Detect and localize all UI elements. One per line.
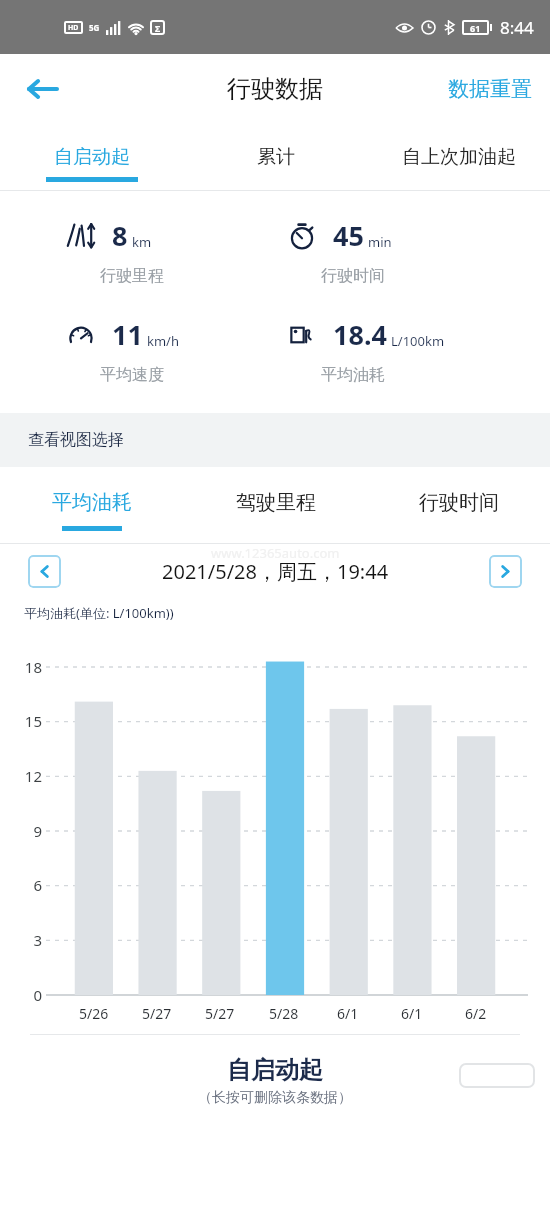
- staticText: 行驶时间: [419, 490, 499, 515]
- button[interactable]: 自启动起: [0, 124, 184, 190]
- staticText: 18: [8, 657, 42, 677]
- staticText: 12: [8, 766, 42, 786]
- staticText: 8: [112, 217, 128, 254]
- staticText: 行驶时间: [321, 266, 385, 286]
- staticText: 61: [470, 22, 481, 34]
- staticText: 5G: [89, 22, 100, 33]
- button[interactable]: 累计: [184, 124, 367, 190]
- staticText: km/h: [147, 332, 179, 350]
- staticText: 5/28: [269, 1004, 299, 1023]
- staticText: 累计: [257, 145, 295, 169]
- staticText: 数据重置: [448, 76, 532, 102]
- staticText: 9: [8, 821, 42, 841]
- button[interactable]: Previous: [28, 555, 61, 588]
- staticText: L/100km: [391, 332, 445, 350]
- staticText: HD: [68, 23, 79, 33]
- button[interactable]: Next: [489, 555, 522, 588]
- staticText: 45: [333, 217, 364, 254]
- staticText: 5/27: [142, 1004, 172, 1023]
- staticText: 行驶里程: [100, 266, 164, 286]
- button[interactable]: 行驶时间: [367, 467, 550, 543]
- staticText: min: [368, 233, 392, 251]
- button[interactable]: 自上次加油起: [367, 124, 550, 190]
- staticText: 平均油耗: [321, 365, 385, 385]
- staticText: 6: [8, 875, 42, 895]
- staticText: 自启动起: [54, 145, 130, 169]
- staticText: 平均油耗: [52, 490, 132, 515]
- staticText: 6/1: [401, 1004, 423, 1023]
- staticText: Σ: [155, 22, 161, 34]
- staticText: 平均速度: [100, 365, 164, 385]
- staticText: 18.4: [333, 316, 387, 353]
- staticText: 6/2: [465, 1004, 487, 1023]
- staticText: km: [132, 233, 152, 251]
- staticText: 平均油耗(单位: L/100km)): [24, 604, 174, 622]
- button[interactable]: 平均油耗: [0, 467, 184, 543]
- staticText: www.12365auto.com: [211, 544, 340, 562]
- staticText: 自启动起: [227, 1055, 323, 1085]
- staticText: 15: [8, 711, 42, 731]
- staticText: 11: [112, 316, 143, 353]
- staticText: 8:44: [500, 16, 534, 39]
- staticText: 自上次加油起: [402, 145, 516, 169]
- staticText: （长按可删除该条数据）: [198, 1089, 352, 1107]
- button[interactable]: 驾驶里程: [184, 467, 367, 543]
- button[interactable]: 数据重置: [444, 68, 536, 110]
- staticText: 查看视图选择: [28, 430, 124, 450]
- button[interactable]: Back: [16, 63, 68, 115]
- staticText: 6/1: [337, 1004, 359, 1023]
- staticText: 0: [8, 985, 42, 1005]
- staticText: 2021/5/28，周五，19:44: [162, 558, 389, 585]
- staticText: 行驶数据: [227, 74, 323, 104]
- staticText: 5/27: [205, 1004, 235, 1023]
- staticText: 5/26: [79, 1004, 109, 1023]
- staticText: 驾驶里程: [236, 490, 316, 515]
- staticText: 3: [8, 930, 42, 950]
